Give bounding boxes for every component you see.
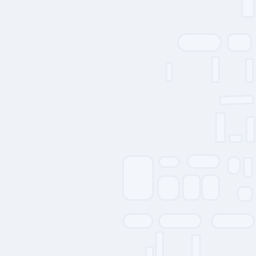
- button[interactable]: Chip two: [159, 214, 201, 228]
- button[interactable]: Item one: [158, 176, 179, 200]
- button[interactable]: Tag: [159, 157, 179, 167]
- button[interactable]: Item three: [202, 175, 219, 200]
- button[interactable]: Chip three: [212, 214, 254, 228]
- button[interactable]: Primary action: [178, 34, 221, 51]
- button[interactable]: Chip one: [123, 214, 152, 228]
- button[interactable]: Item two: [183, 175, 200, 200]
- button[interactable]: More: [228, 157, 240, 174]
- button[interactable]: Filter: [187, 155, 219, 168]
- button[interactable]: Secondary action: [228, 34, 251, 51]
- button[interactable]: Item four: [238, 187, 252, 201]
